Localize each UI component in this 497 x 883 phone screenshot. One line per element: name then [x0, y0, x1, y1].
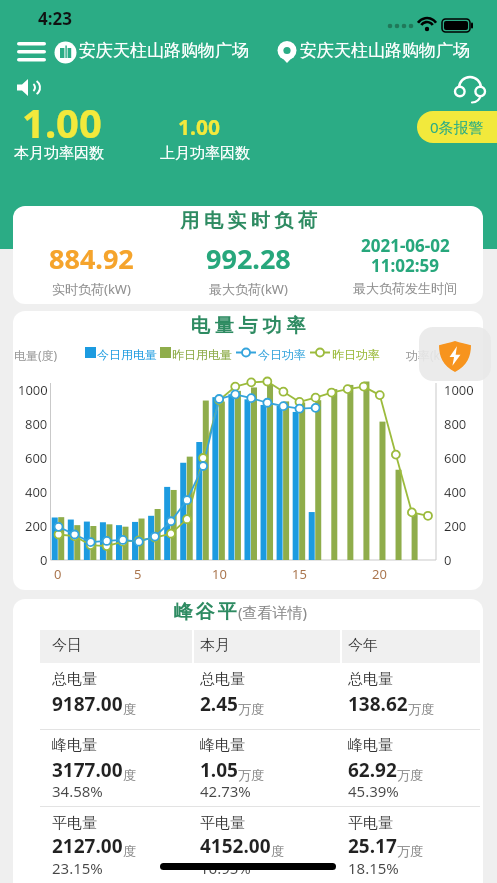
staticText: 2127.00 — [52, 833, 123, 859]
staticText: 万度 — [397, 843, 423, 859]
staticText: 11:02:59 — [371, 254, 439, 277]
staticText: 1000 — [18, 381, 48, 399]
staticText: 峰谷平 — [172, 600, 238, 624]
staticText: 今年 — [348, 636, 378, 655]
staticText: 600 — [444, 449, 467, 467]
button[interactable] — [165, 599, 345, 627]
staticText: 本月 — [200, 636, 230, 655]
staticText: 600 — [25, 449, 48, 467]
staticText: 3177.00 — [52, 757, 123, 783]
staticText: 5 — [134, 565, 142, 583]
staticText: 功率(kW) — [406, 347, 455, 363]
staticText: 平电量 — [200, 814, 245, 833]
staticText: 安庆天柱山路购物广场 — [300, 40, 470, 61]
staticText: 4:23 — [38, 7, 72, 30]
staticText: 0 — [444, 551, 452, 569]
staticText: 0 — [40, 551, 48, 569]
staticText: 平电量 — [52, 814, 97, 833]
staticText: 20 — [372, 565, 387, 583]
staticText: 今日用电量 — [97, 347, 157, 362]
button[interactable] — [12, 37, 54, 67]
staticText: 总电量 — [52, 670, 97, 689]
staticText: 1.00 — [178, 113, 220, 142]
staticText: 度 — [271, 843, 284, 859]
button[interactable] — [12, 75, 46, 101]
staticText: 2.45 — [200, 691, 238, 717]
staticText: 昨日功率 — [332, 347, 380, 362]
staticText: 平电量 — [348, 814, 393, 833]
staticText: 实时负荷(kW) — [52, 280, 131, 298]
staticText: 峰电量 — [52, 736, 97, 755]
staticText: 62.92 — [348, 757, 397, 783]
staticText: 18.15% — [348, 858, 399, 878]
staticText: 上月功率因数 — [160, 144, 250, 163]
staticText: 度 — [123, 767, 136, 783]
staticText: 0 — [54, 565, 62, 583]
staticText: 最大负荷发生时间 — [353, 280, 457, 296]
staticText: 138.62 — [348, 691, 408, 717]
staticText: 0条报警 — [430, 117, 484, 137]
staticText: 万度 — [238, 767, 264, 783]
staticText: 800 — [25, 415, 48, 433]
staticText: 992.28 — [206, 240, 291, 277]
staticText: 45.39% — [348, 781, 399, 801]
staticText: 4152.00 — [200, 833, 271, 859]
staticText: 本月功率因数 — [14, 144, 104, 163]
staticText: 400 — [25, 483, 48, 501]
staticText: 200 — [25, 517, 48, 535]
staticText: 今日 — [52, 636, 82, 655]
staticText: 1.00 — [22, 95, 102, 149]
staticText: 总电量 — [200, 670, 245, 689]
staticText: 安庆天柱山路购物广场 — [79, 40, 249, 61]
staticText: 42.73% — [200, 781, 251, 801]
staticText: 10 — [212, 565, 227, 583]
staticText: 2021-06-02 — [361, 234, 450, 257]
button[interactable]: 安庆天柱山路购物广场 — [277, 39, 477, 67]
staticText: 1000 — [444, 381, 474, 399]
staticText: 今日功率 — [258, 347, 306, 362]
staticText: 用电实时负荷 — [178, 209, 319, 233]
staticText: 峰电量 — [200, 736, 245, 755]
staticText: 度 — [123, 701, 136, 717]
staticText: 25.17 — [348, 833, 397, 859]
staticText: 23.15% — [52, 858, 103, 878]
staticText: 最大负荷(kW) — [209, 280, 288, 298]
staticText: 电量与功率 — [188, 314, 308, 338]
staticText: 万度 — [238, 701, 264, 717]
button[interactable]: 安庆天柱山路购物广场 — [54, 39, 259, 67]
button[interactable]: 0条报警 — [417, 111, 497, 143]
staticText: 1.05 — [200, 757, 238, 783]
staticText: 200 — [444, 517, 467, 535]
staticText: 16.95% — [200, 858, 251, 878]
staticText: 34.58% — [52, 781, 103, 801]
staticText: 9187.00 — [52, 691, 123, 717]
staticText: 400 — [444, 483, 467, 501]
staticText: 峰电量 — [348, 736, 393, 755]
staticText: 15 — [292, 565, 307, 583]
staticText: 万度 — [408, 701, 434, 717]
staticText: 电量(度) — [14, 347, 58, 363]
staticText: 万度 — [397, 767, 423, 783]
button[interactable] — [419, 327, 491, 381]
staticText: 度 — [123, 843, 136, 859]
staticText: 884.92 — [49, 240, 134, 277]
staticText: 总电量 — [348, 670, 393, 689]
staticText: (查看详情) — [238, 602, 308, 622]
staticText: 800 — [444, 415, 467, 433]
staticText: 昨日用电量 — [172, 347, 232, 362]
button[interactable] — [452, 72, 488, 110]
